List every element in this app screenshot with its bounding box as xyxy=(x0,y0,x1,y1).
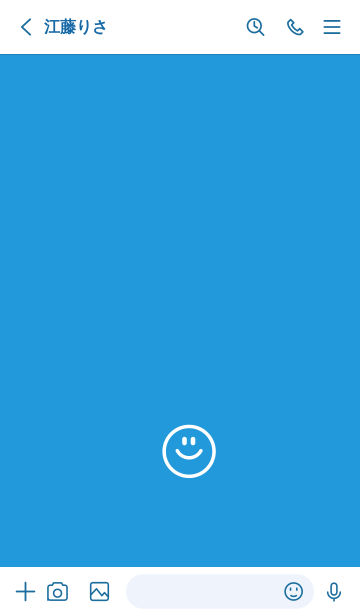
staticText: 江藤りさ xyxy=(44,17,108,37)
button[interactable]: Back xyxy=(13,5,39,49)
button[interactable]: Add xyxy=(9,567,42,616)
button[interactable]: Photos xyxy=(73,567,126,616)
button[interactable]: Search history xyxy=(235,5,276,49)
button[interactable]: 江藤りさ xyxy=(39,5,116,49)
button[interactable]: Call xyxy=(276,5,315,49)
button[interactable]: Voice message xyxy=(314,567,355,616)
button[interactable] xyxy=(126,574,314,609)
button[interactable]: Camera xyxy=(42,567,73,616)
button[interactable]: Menu xyxy=(315,5,349,49)
